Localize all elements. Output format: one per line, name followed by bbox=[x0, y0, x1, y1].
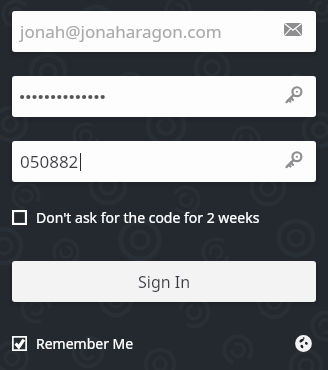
staticText: Sign In bbox=[138, 271, 191, 293]
staticText: 050882 bbox=[20, 150, 79, 173]
other: Password bbox=[284, 86, 303, 105]
other: Email bbox=[284, 23, 302, 36]
button[interactable]: Don't ask for the code for 2 weeks bbox=[0, 204, 328, 230]
staticText: Don't ask for the code for 2 weeks bbox=[36, 208, 260, 227]
button[interactable]: 050882 bbox=[12, 141, 316, 182]
button[interactable]: Change language bbox=[292, 332, 314, 354]
button[interactable]: Remember Me bbox=[0, 334, 134, 353]
other: Password bbox=[284, 151, 303, 170]
button[interactable]: jonah@jonaharagon.com bbox=[12, 11, 316, 52]
staticText: Remember Me bbox=[36, 334, 134, 353]
staticText: jonah@jonaharagon.com bbox=[20, 20, 222, 43]
button[interactable]: Sign In bbox=[12, 261, 316, 302]
button[interactable]: Password bbox=[12, 76, 316, 117]
